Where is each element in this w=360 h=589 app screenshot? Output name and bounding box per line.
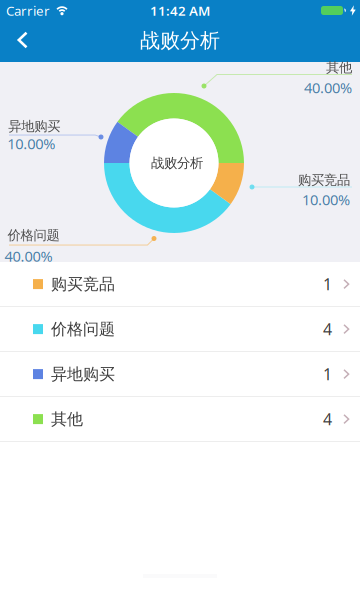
staticText: 异地购买: [51, 364, 115, 384]
staticText: 价格问题: [7, 227, 59, 243]
staticText: 价格问题: [51, 319, 115, 339]
button[interactable]: Back: [0, 26, 40, 59]
staticText: 其他: [326, 59, 352, 76]
staticText: 10.00%: [302, 190, 350, 209]
button[interactable]: 价格问题: [0, 307, 360, 352]
staticText: 1: [323, 363, 332, 385]
staticText: 4: [323, 408, 332, 430]
staticText: 异地购买: [8, 118, 60, 134]
button[interactable]: 购买竞品: [0, 262, 360, 307]
staticText: 战败分析: [151, 155, 203, 171]
button[interactable]: 异地购买: [0, 352, 360, 397]
staticText: 购买竞品: [298, 172, 350, 188]
staticText: 40.00%: [4, 246, 52, 266]
staticText: 40.00%: [304, 78, 352, 97]
staticText: 战败分析: [140, 28, 220, 53]
staticText: 10.00%: [7, 134, 55, 153]
staticText: 1: [323, 273, 332, 295]
button[interactable]: 其他: [0, 397, 360, 442]
staticText: 11:42 AM: [150, 2, 210, 19]
staticText: 购买竞品: [51, 274, 115, 294]
staticText: 其他: [51, 409, 83, 429]
staticText: Carrier: [6, 2, 50, 19]
staticText: 4: [323, 318, 332, 340]
